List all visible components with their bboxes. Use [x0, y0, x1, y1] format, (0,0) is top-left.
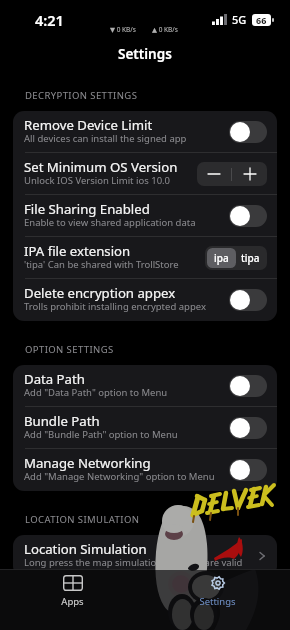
- staticText: tipa: [241, 251, 260, 265]
- staticText: 'tipa' Can be shared with TrollStore: [24, 258, 179, 271]
- staticText: Location Simulation: [24, 540, 147, 558]
- staticText: 5G: [232, 12, 247, 27]
- staticText: Settings: [199, 595, 236, 608]
- button[interactable]: Decrease: [197, 162, 231, 186]
- staticText: Remove Device Limit: [24, 116, 153, 134]
- staticText: Add "Manage Networking" option to Menu: [24, 470, 215, 483]
- other: Open: [257, 548, 267, 564]
- button[interactable]: tipa: [236, 248, 265, 268]
- staticText: File Sharing Enabled: [24, 200, 150, 218]
- staticText: ▼ 0 KB/s: [110, 25, 136, 34]
- staticText: Data Path: [24, 370, 85, 388]
- staticText: ▲ 0 KB/s: [152, 25, 178, 34]
- button[interactable]: Delete encryption appex: [13, 279, 277, 321]
- staticText: 66: [256, 14, 267, 26]
- staticText: LOCATION SIMULATION: [25, 513, 140, 526]
- button[interactable]: Set Minimum OS Version: [13, 153, 277, 195]
- staticText: Apps: [61, 595, 84, 608]
- staticText: Add "Data Path" option to Menu: [24, 386, 168, 399]
- button[interactable]: Toggle: [229, 289, 267, 311]
- button[interactable]: Toggle: [229, 375, 267, 397]
- staticText: Bundle Path: [24, 412, 100, 430]
- staticText: OPTION SETTINGS: [25, 343, 114, 356]
- button[interactable]: Toggle: [229, 459, 267, 481]
- staticText: 4:21: [35, 10, 64, 30]
- button[interactable]: File Sharing Enabled: [13, 195, 277, 237]
- button[interactable]: Apps: [0, 570, 145, 630]
- button[interactable]: Location Simulation: [13, 535, 277, 577]
- staticText: Add "Bundle Path" option to Menu: [24, 428, 178, 441]
- button[interactable]: IPA file extension: [13, 237, 277, 279]
- button[interactable]: Remove Device Limit: [13, 111, 277, 153]
- staticText: Trolls prohibit installing encrypted app…: [24, 300, 206, 313]
- button[interactable]: Toggle: [229, 205, 267, 227]
- button[interactable]: Increase: [232, 162, 267, 186]
- staticText: Delete encryption appex: [24, 284, 176, 302]
- button[interactable]: Data Path: [13, 365, 277, 407]
- staticText: Set Minimum OS Version: [24, 158, 178, 176]
- button[interactable]: ipa: [207, 248, 236, 268]
- staticText: Enable to view shared application data: [24, 216, 196, 229]
- button[interactable]: Toggle: [229, 417, 267, 439]
- staticText: Manage Networking: [24, 454, 151, 472]
- staticText: ipa: [214, 251, 229, 265]
- staticText: All devices can install the signed app: [24, 132, 187, 145]
- button[interactable]: Settings: [145, 570, 290, 630]
- staticText: IPA file extension: [24, 242, 131, 260]
- staticText: Settings: [118, 45, 172, 63]
- button[interactable]: Manage Networking: [13, 449, 277, 491]
- button[interactable]: Bundle Path: [13, 407, 277, 449]
- button[interactable]: Toggle: [229, 121, 267, 143]
- staticText: Unlock IOS Version Limit ios 10.0: [24, 174, 171, 187]
- staticText: Long press the map simulation, All apps …: [24, 556, 243, 569]
- staticText: DECRYPTION SETTINGS: [25, 89, 138, 102]
